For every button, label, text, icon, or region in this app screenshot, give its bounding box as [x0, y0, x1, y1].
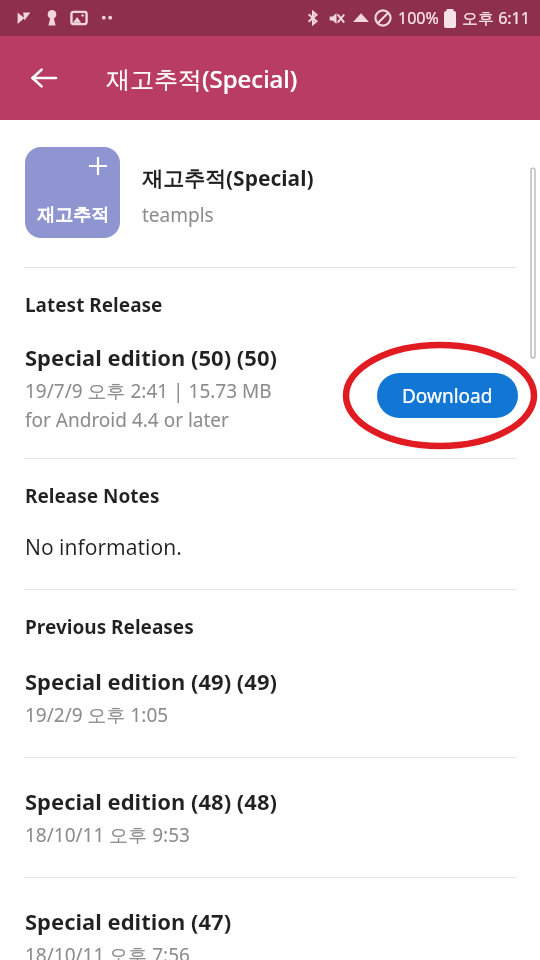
staticText: 19/7/9 오후 2:41 | 15.73 MB	[25, 378, 272, 404]
staticText: 18/10/11 오후 7:56	[25, 942, 190, 960]
staticText: Release Notes	[25, 483, 160, 509]
button[interactable]: Special edition (48) (48)	[0, 786, 540, 848]
staticText: teampls	[142, 202, 214, 228]
staticText: Special edition (50) (50)	[25, 342, 277, 372]
staticText: Special edition (49) (49)	[25, 666, 277, 696]
staticText: 100%	[398, 7, 439, 29]
staticText: 18/10/11 오후 9:53	[25, 822, 190, 848]
button[interactable]: Special edition (47)	[0, 906, 540, 960]
staticText: Previous Releases	[25, 614, 194, 640]
staticText: 재고추적(Special)	[142, 164, 314, 193]
button[interactable]: 재고추적	[25, 147, 515, 238]
staticText: 19/2/9 오후 1:05	[25, 702, 169, 728]
staticText: Latest Release	[25, 292, 163, 318]
staticText: No information.	[25, 533, 182, 562]
staticText: for Android 4.4 or later	[25, 407, 229, 433]
button[interactable]: Download	[377, 373, 518, 418]
staticText: Download	[402, 383, 493, 409]
staticText: 오후 6:11	[462, 7, 530, 29]
staticText: 재고추적(Special)	[106, 62, 298, 95]
staticText: Special edition (48) (48)	[25, 786, 277, 816]
button[interactable]: Back	[12, 46, 76, 110]
staticText: Special edition (47)	[25, 906, 232, 936]
button[interactable]: Special edition (49) (49)	[0, 666, 540, 728]
staticText: 재고추적	[37, 204, 109, 227]
